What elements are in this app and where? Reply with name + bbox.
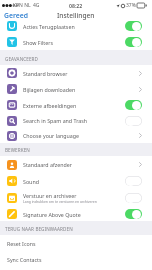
button[interactable]: Verstuur en archiveer — [0, 189, 152, 207]
button[interactable]: Toggle on — [125, 209, 142, 219]
staticText: Lang indrukken om te versturen en archiv… — [23, 199, 97, 204]
staticText: Show Filters — [23, 39, 53, 46]
staticText: GEAVANCEERD — [5, 56, 38, 62]
staticText: Sound — [23, 178, 39, 185]
staticText: Acties Terugplaatsen — [23, 23, 75, 30]
button[interactable]: Standard browser — [0, 65, 152, 81]
staticText: TERUG NAAR BEGINWAARDEN — [5, 226, 73, 232]
staticText: Bijlagen downloaden — [23, 86, 76, 93]
button[interactable]: Reset Icons — [0, 235, 152, 251]
button[interactable]: Toggle on — [125, 37, 142, 47]
button[interactable]: Sync Contacts — [0, 251, 152, 268]
staticText: Search in Spam and Trash — [23, 117, 88, 124]
button[interactable]: Sound — [0, 173, 152, 189]
staticText: Verstuur en archiveer — [23, 192, 77, 199]
staticText: 37% — [126, 2, 136, 9]
staticText: Standard browser — [23, 70, 68, 77]
button[interactable]: Toggle on — [125, 21, 142, 31]
button[interactable]: Search in Spam and Trash — [0, 113, 152, 128]
button[interactable]: Toggle off — [125, 176, 142, 186]
staticText: Signature Above Quote — [23, 211, 81, 218]
button[interactable]: Externe afbeeldingen — [0, 97, 152, 113]
staticText: BEWERKEN — [5, 147, 30, 153]
button[interactable]: Choose your language — [0, 128, 152, 143]
staticText: KPN NL — [13, 2, 31, 9]
staticText: Externe afbeeldingen — [23, 102, 77, 109]
staticText: Instellingen — [57, 11, 95, 20]
button[interactable]: Signature Above Quote — [0, 207, 152, 221]
staticText: Reset Icons — [7, 240, 36, 247]
button[interactable]: Bijlagen downloaden — [0, 81, 152, 97]
button[interactable]: Show Filters — [0, 34, 152, 50]
button[interactable]: Standaard afzender — [0, 156, 152, 173]
staticText: Standaard afzender — [23, 161, 72, 168]
staticText: Choose your language — [23, 132, 80, 139]
button[interactable]: Toggle on — [125, 100, 142, 110]
staticText: Sync Contacts — [7, 256, 42, 263]
button[interactable]: Toggle off — [125, 193, 142, 203]
button[interactable]: Acties Terugplaatsen — [0, 18, 152, 34]
button[interactable]: Toggle off — [125, 116, 142, 126]
staticText: 08:22 — [69, 2, 83, 9]
staticText: 4G — [33, 2, 40, 9]
button[interactable]: Gereed — [4, 11, 28, 20]
